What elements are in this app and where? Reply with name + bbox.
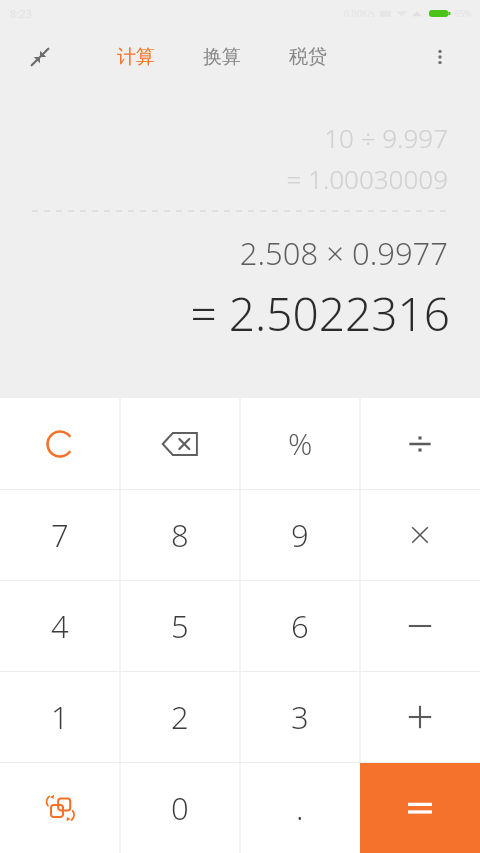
button[interactable]: 2 [120,672,240,762]
button[interactable]: . [240,763,360,853]
button[interactable]: Backspace [120,398,240,489]
button[interactable]: 4 [0,581,120,671]
button[interactable]: Equals [360,763,480,853]
staticText: 3 [291,696,309,738]
button[interactable]: 5 [120,581,240,671]
staticText: 5 [171,605,189,647]
staticText: 9 [291,514,309,556]
staticText: 2.508 × 0.9977 [0,232,448,274]
staticText: 85% [454,7,472,19]
button[interactable]: More options [420,37,460,77]
button[interactable]: Minus [360,581,480,671]
button[interactable]: 0 [120,763,240,853]
staticText: 0.00K/s [344,7,376,19]
staticText: 1 [51,696,69,738]
staticText: . [296,787,304,829]
button[interactable]: % [240,398,360,489]
staticText: 税贷 [289,45,327,69]
staticText: 换算 [203,45,241,69]
staticText: 0 [171,787,189,829]
button[interactable]: 1 [0,672,120,762]
button[interactable]: 税贷 [273,37,343,77]
button[interactable]: Convert units [0,763,120,853]
button[interactable]: Plus [360,672,480,762]
button[interactable]: Multiply [360,490,480,580]
button[interactable]: Collapse [18,35,62,79]
button[interactable]: Clear [0,398,120,489]
staticText: 计算 [117,45,155,69]
staticText: = 2.5022316 [0,282,450,345]
staticText: 6 [291,605,309,647]
staticText: 2 [171,696,189,738]
staticText: 8:23 [10,6,32,21]
staticText: = 1.00030009 [0,161,448,196]
staticText: 8 [171,514,189,556]
button[interactable]: 6 [240,581,360,671]
staticText: 7 [51,514,69,556]
staticText: % [288,423,313,464]
staticText: 4 [51,605,69,647]
button[interactable]: Divide [360,398,480,489]
button[interactable]: 计算 [101,37,171,77]
button[interactable]: 7 [0,490,120,580]
button[interactable]: 换算 [187,37,257,77]
button[interactable]: 3 [240,672,360,762]
button[interactable]: 8 [120,490,240,580]
button[interactable]: 9 [240,490,360,580]
staticText: 10 ÷ 9.997 [0,120,448,155]
